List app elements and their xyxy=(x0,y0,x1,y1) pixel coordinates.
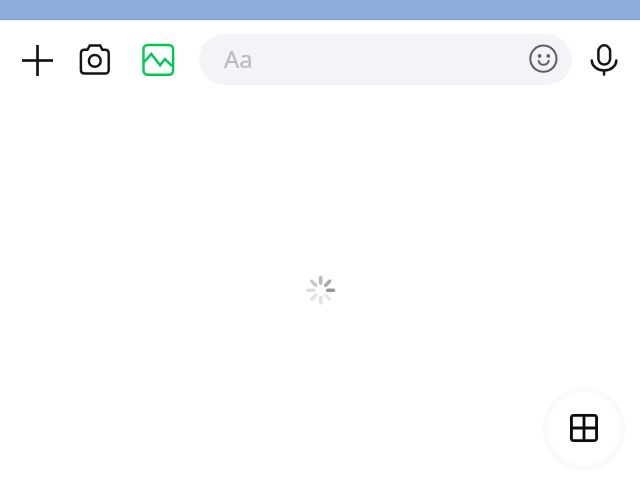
button[interactable]: Emoji xyxy=(526,42,561,77)
button[interactable]: Grid view xyxy=(546,390,622,466)
button[interactable]: Camera xyxy=(79,43,111,76)
button[interactable]: Add xyxy=(15,38,59,82)
staticText: Aa xyxy=(224,42,253,75)
button[interactable]: Voice message xyxy=(590,42,618,78)
button[interactable]: Aa xyxy=(199,34,572,85)
button[interactable]: Gallery xyxy=(143,44,174,76)
